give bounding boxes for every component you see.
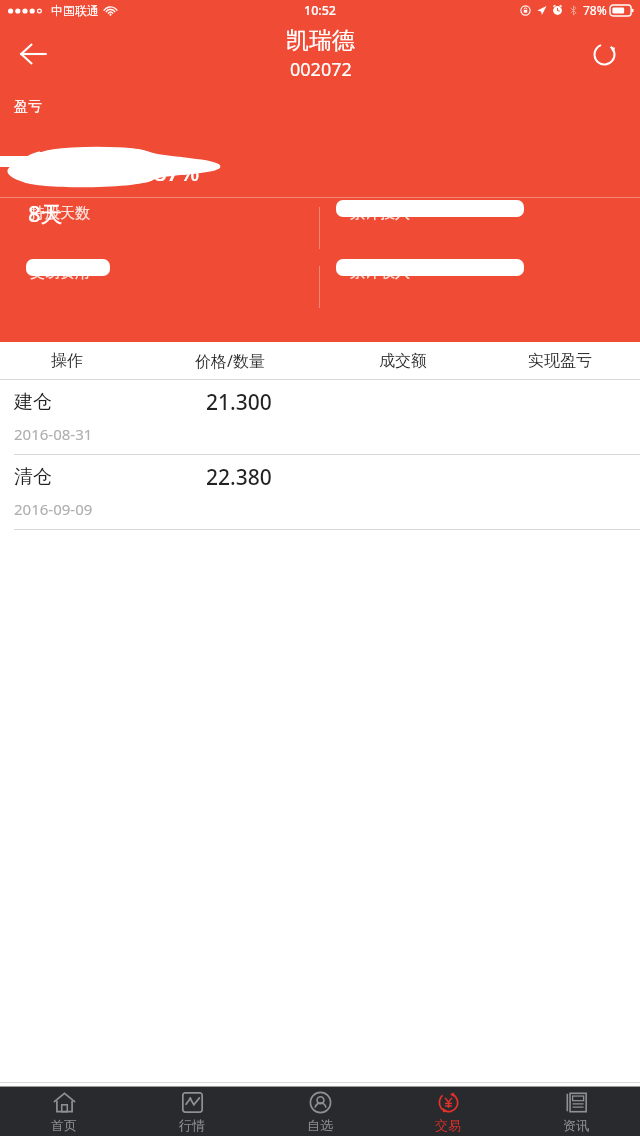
staticText: 成交额	[379, 351, 427, 371]
staticText: 清仓	[14, 465, 52, 489]
staticText: 22.380	[206, 463, 272, 492]
staticText: 交易费用	[30, 263, 90, 282]
staticText: 价格/数量	[195, 350, 265, 372]
staticText: 4.87%	[134, 156, 200, 187]
button[interactable]: 交易	[384, 1091, 512, 1133]
button[interactable]: 首页	[0, 1091, 128, 1133]
staticText: 凯瑞德	[286, 26, 355, 55]
staticText: 中国联通	[51, 3, 99, 18]
staticText: 78%	[583, 2, 607, 18]
staticText: 交易	[435, 1117, 461, 1133]
staticText: 自选	[307, 1117, 333, 1133]
staticText: 累计投入	[350, 204, 410, 223]
staticText: 2016-09-09	[14, 499, 93, 519]
staticText: 10:52	[304, 2, 337, 19]
staticText: 行情	[179, 1117, 205, 1133]
button[interactable]: 资讯	[512, 1091, 640, 1133]
button[interactable]: Back	[6, 27, 60, 81]
staticText: 2016-08-31	[14, 424, 93, 444]
staticText: 首页	[51, 1117, 77, 1133]
staticText: 盈亏	[14, 98, 42, 116]
staticText: 建仓	[14, 390, 52, 414]
staticText: 实现盈亏	[528, 351, 592, 371]
button[interactable]: 行情	[128, 1091, 256, 1133]
button[interactable]: 建仓	[0, 380, 640, 454]
staticText: 8天	[28, 198, 63, 228]
staticText: 累计收入	[350, 263, 410, 282]
staticText: 资讯	[563, 1117, 589, 1133]
staticText: 002072	[290, 57, 352, 82]
button[interactable]: 自选	[256, 1091, 384, 1133]
staticText: 持股天数	[30, 204, 90, 223]
button[interactable]: Refresh	[578, 28, 630, 80]
staticText: 操作	[51, 351, 83, 371]
button[interactable]: 清仓	[0, 455, 640, 529]
staticText: 21.300	[206, 388, 272, 417]
